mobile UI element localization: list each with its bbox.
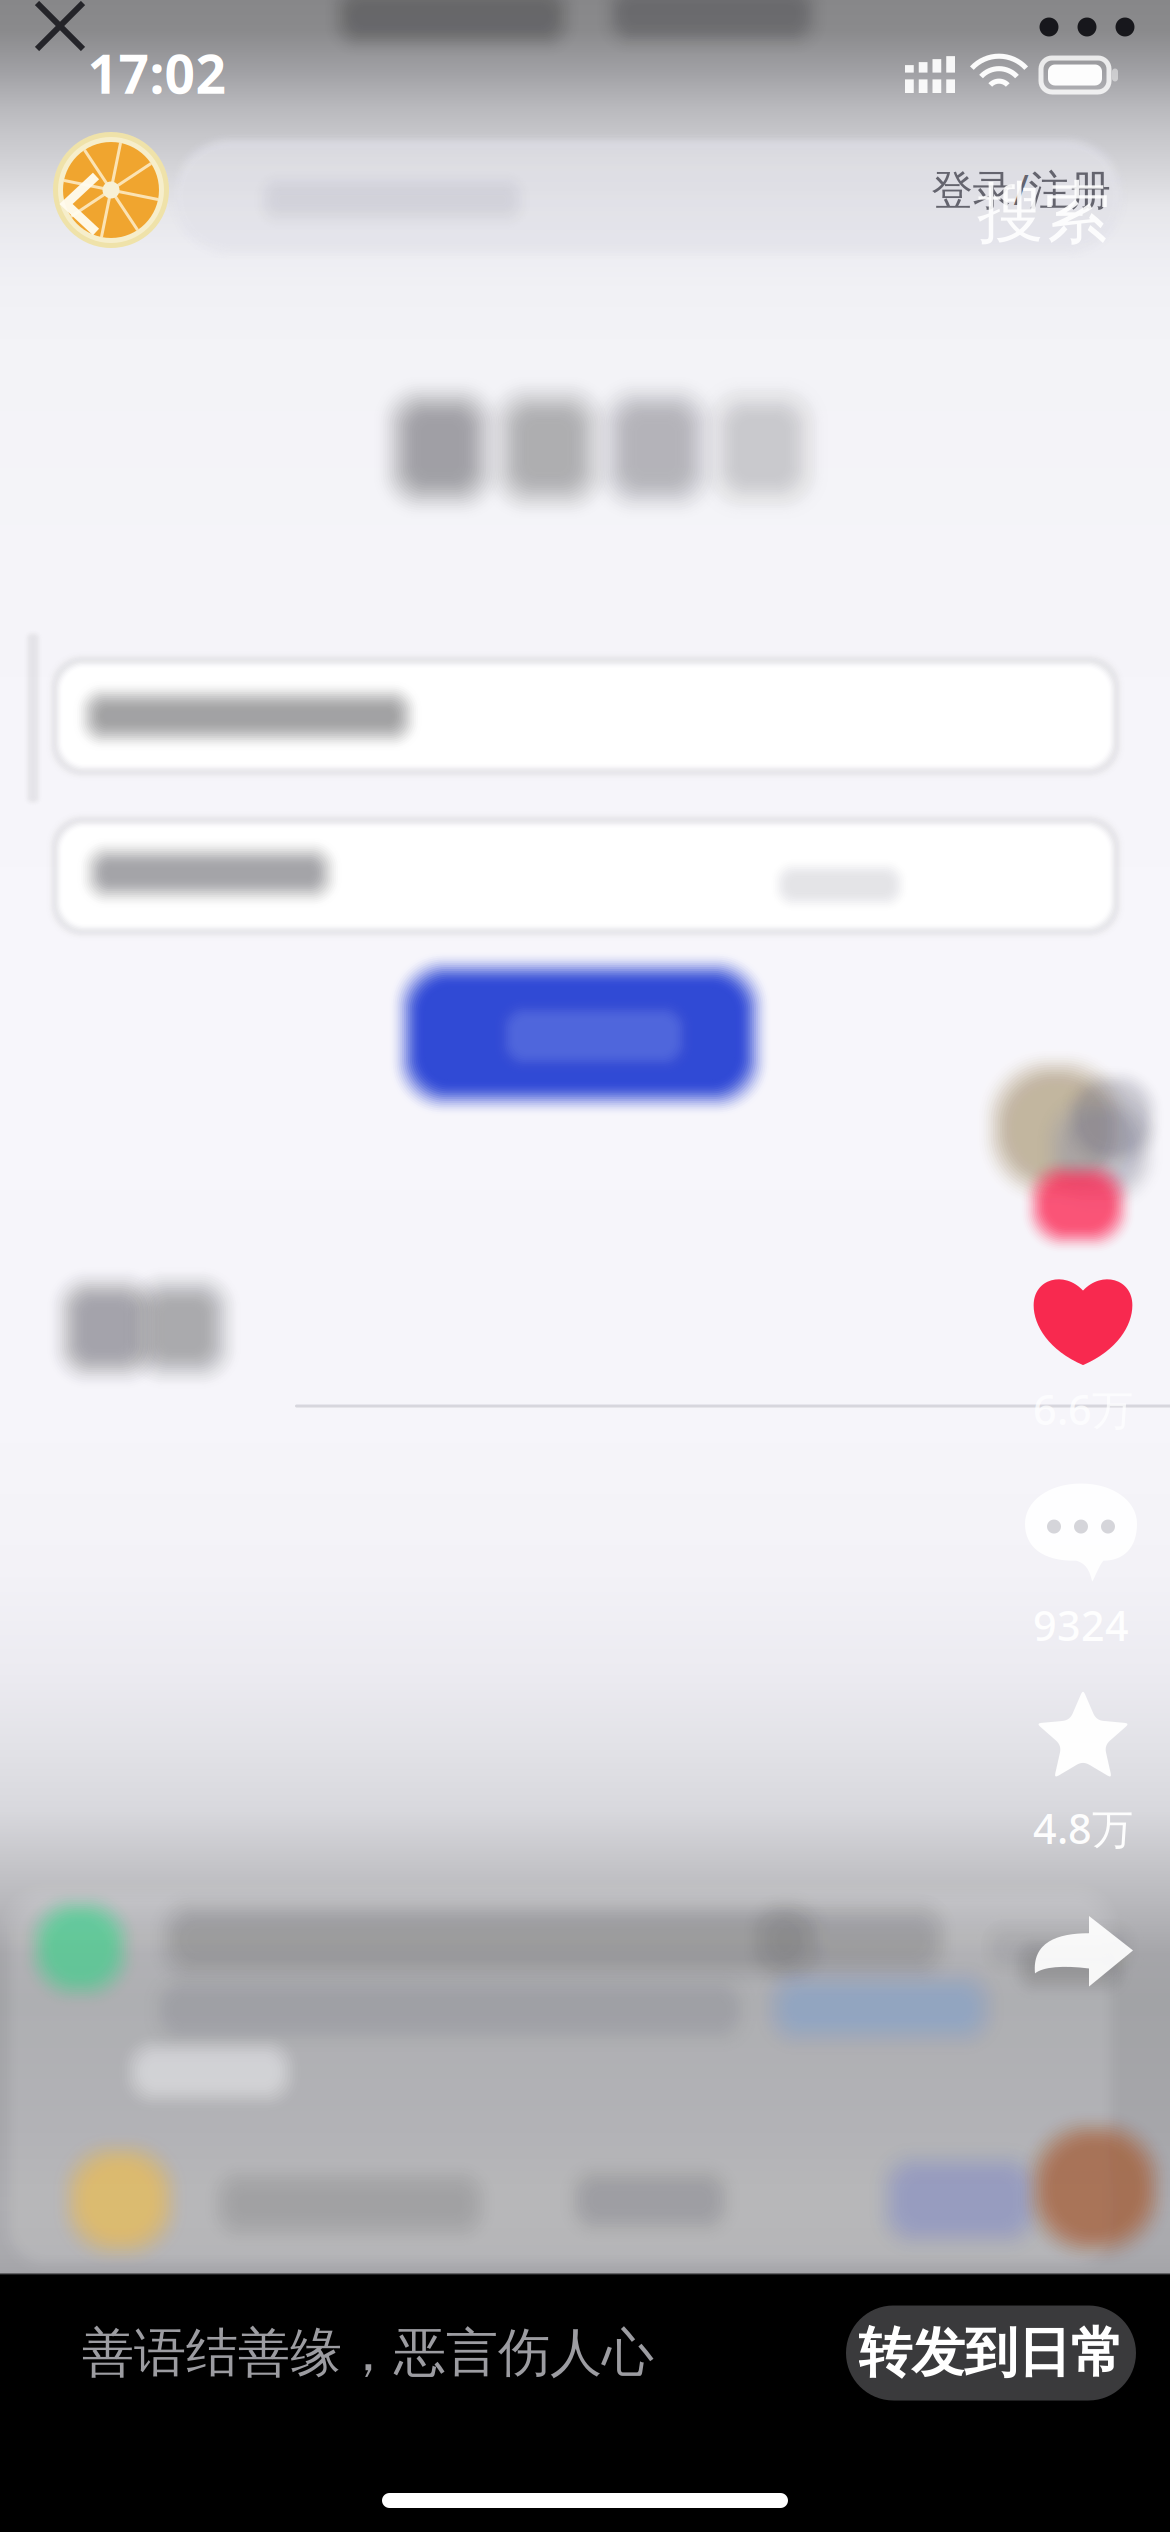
button[interactable]: 搜索	[959, 162, 1129, 264]
button[interactable]: Share	[1008, 1897, 1158, 2017]
staticText: 17:02	[87, 38, 226, 108]
staticText: 搜索	[977, 172, 1111, 254]
staticText: 4.8万	[1033, 1801, 1133, 1855]
button[interactable]: Comments	[1006, 1484, 1156, 1652]
button[interactable]: Close	[9, 0, 111, 77]
button[interactable]: More	[1011, 0, 1162, 64]
staticText: 9324	[1033, 1598, 1129, 1652]
button[interactable]: Favourite	[1008, 1687, 1158, 1855]
button[interactable]: Back	[49, 128, 173, 252]
staticText: 转发到日常	[858, 2320, 1123, 2386]
staticText: 6.6万	[1033, 1382, 1133, 1436]
button[interactable]: Like	[1008, 1274, 1158, 1436]
button[interactable]: 转发到日常	[846, 2305, 1136, 2400]
staticText: 登录/注册	[931, 162, 1110, 216]
staticText: 善语结善缘，恶言伤人心	[82, 2321, 654, 2385]
